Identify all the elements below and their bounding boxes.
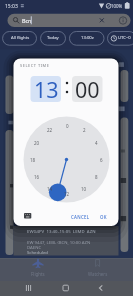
- staticText: SELECT TIME: [20, 63, 50, 68]
- staticText: 13:00z: [81, 35, 94, 41]
- staticText: EW 9447, LEBL (BCN, 10:00 AZN: [27, 239, 91, 245]
- staticText: 13: [34, 75, 59, 104]
- staticText: 14: [47, 186, 53, 192]
- staticText: 100%: [111, 3, 123, 9]
- staticText: 16: [34, 174, 40, 180]
- staticText: 15:03: [5, 3, 18, 10]
- staticText: 4: [95, 140, 98, 146]
- staticText: CANCEL: [71, 214, 90, 220]
- staticText: Watchers: [88, 271, 108, 277]
- staticText: EWG4PV 13:40–15:05 LEMD AZN: [27, 228, 96, 234]
- staticText: All flights: [11, 35, 30, 41]
- staticText: Bcn: [22, 17, 32, 24]
- staticText: 20: [34, 140, 40, 146]
- staticText: 10: [81, 186, 87, 192]
- staticText: OK: [100, 214, 107, 220]
- staticText: 6: [100, 157, 103, 163]
- staticText: 00: [75, 75, 100, 104]
- staticText: 8: [95, 174, 98, 180]
- staticText: 18: [30, 157, 36, 163]
- staticText: Flights: [31, 271, 45, 277]
- staticText: 22: [47, 127, 53, 133]
- staticText: 12: [64, 191, 70, 197]
- staticText: 2: [83, 127, 86, 133]
- staticText: Scheduled: [27, 249, 48, 255]
- staticText: Today: [47, 35, 59, 41]
- staticText: 0: [66, 123, 69, 129]
- staticText: DAENC: [27, 244, 42, 250]
- staticText: UTC−0: [118, 35, 131, 41]
